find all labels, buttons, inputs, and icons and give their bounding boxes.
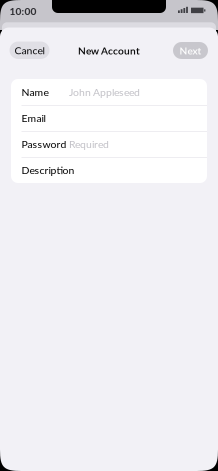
staticText: John Appleseed [69, 86, 140, 98]
staticText: 10:00 [9, 5, 36, 17]
staticText: Description [21, 164, 74, 176]
button[interactable]: Password [11, 131, 207, 157]
staticText: Next [179, 44, 201, 57]
staticText: Name [21, 86, 48, 98]
staticText: Password [21, 138, 66, 150]
button[interactable]: Next [173, 42, 208, 59]
button[interactable]: Description [11, 157, 207, 183]
button[interactable]: Cancel [9, 41, 49, 59]
staticText: Required [69, 138, 109, 150]
staticText: Email [21, 112, 45, 124]
button[interactable]: Name [11, 79, 207, 105]
button[interactable]: Email [11, 105, 207, 131]
staticText: New Account [78, 44, 140, 57]
staticText: Cancel [14, 44, 44, 56]
